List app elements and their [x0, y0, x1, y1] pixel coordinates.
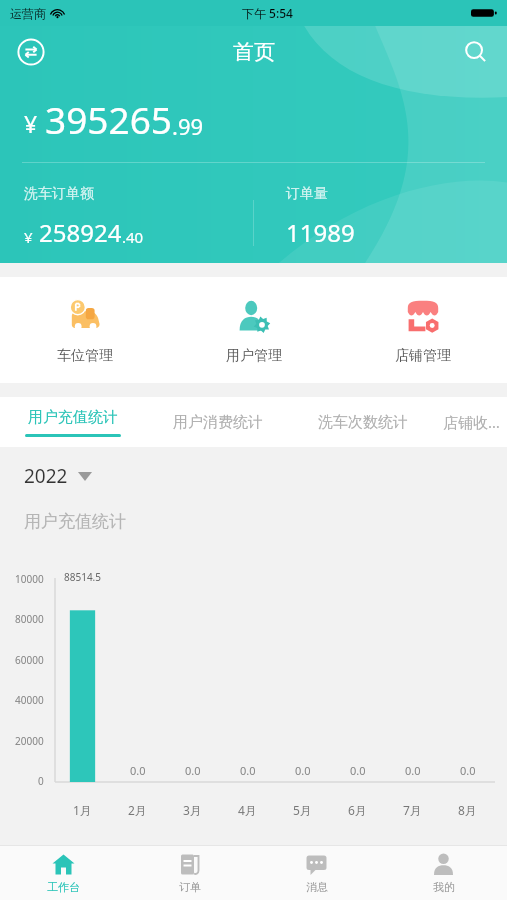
- staticText: 60000: [15, 653, 44, 667]
- staticText: 395265: [45, 94, 172, 144]
- staticText: 4月: [238, 802, 257, 818]
- staticText: ¥: [24, 108, 38, 139]
- staticText: .99: [172, 111, 204, 141]
- button[interactable]: 2022: [24, 463, 92, 489]
- button[interactable]: 车位管理: [0, 277, 169, 383]
- staticText: 5月: [293, 802, 312, 818]
- staticText: 6月: [348, 802, 367, 818]
- staticText: 洗车次数统计: [318, 413, 408, 432]
- staticText: 用户管理: [226, 347, 282, 365]
- button[interactable]: 用户充值统计: [0, 397, 145, 447]
- button[interactable]: Switch: [14, 35, 48, 69]
- staticText: 80000: [15, 612, 44, 626]
- button[interactable]: 店铺管理: [338, 277, 507, 383]
- staticText: 运营商: [10, 6, 46, 21]
- staticText: 用户充值统计: [28, 408, 118, 427]
- staticText: 订单量: [286, 185, 328, 203]
- button[interactable]: Search: [459, 35, 493, 69]
- staticText: 店铺收…: [443, 412, 500, 432]
- staticText: 我的: [433, 880, 455, 894]
- button[interactable]: 消息: [253, 845, 380, 900]
- staticText: ¥: [24, 227, 33, 247]
- staticText: .40: [122, 227, 144, 247]
- staticText: 订单: [179, 880, 201, 894]
- button[interactable]: 订单: [126, 845, 253, 900]
- staticText: 3月: [183, 802, 202, 818]
- staticText: 消息: [306, 880, 328, 894]
- button[interactable]: 店铺收…: [435, 397, 507, 447]
- button[interactable]: 我的: [380, 845, 507, 900]
- staticText: 20000: [15, 734, 44, 748]
- staticText: 0.0: [295, 763, 311, 778]
- button[interactable]: 洗车次数统计: [290, 397, 435, 447]
- button[interactable]: 工作台: [0, 845, 126, 900]
- staticText: 88514.5: [64, 570, 101, 584]
- staticText: 用户充值统计: [24, 511, 126, 532]
- staticText: 洗车订单额: [24, 185, 94, 203]
- staticText: 店铺管理: [395, 347, 451, 365]
- staticText: 工作台: [47, 880, 80, 894]
- staticText: 0.0: [130, 763, 146, 778]
- staticText: 0: [38, 774, 44, 788]
- staticText: 258924: [39, 216, 122, 249]
- staticText: 11989: [286, 216, 355, 249]
- button[interactable]: 用户管理: [169, 277, 338, 383]
- staticText: 0.0: [240, 763, 256, 778]
- staticText: 10000: [15, 572, 44, 586]
- staticText: 7月: [403, 802, 422, 818]
- staticText: 车位管理: [57, 347, 113, 365]
- staticText: 2月: [128, 802, 147, 818]
- staticText: 0.0: [185, 763, 201, 778]
- staticText: 0.0: [405, 763, 421, 778]
- staticText: 0.0: [460, 763, 476, 778]
- staticText: 0.0: [350, 763, 366, 778]
- staticText: 40000: [15, 693, 44, 707]
- staticText: 用户消费统计: [173, 413, 263, 432]
- button[interactable]: 用户消费统计: [145, 397, 290, 447]
- staticText: 1月: [73, 802, 92, 818]
- staticText: 首页: [233, 39, 275, 65]
- staticText: 8月: [458, 802, 477, 818]
- staticText: 2022: [24, 463, 68, 489]
- staticText: 下午 5:54: [242, 5, 293, 21]
